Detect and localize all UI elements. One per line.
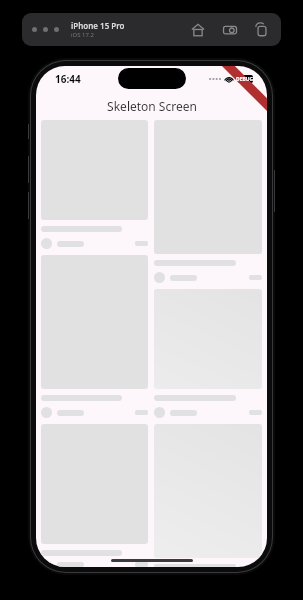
button[interactable]: Window control: [43, 27, 48, 32]
button[interactable]: [154, 289, 262, 424]
button[interactable]: Window control: [54, 27, 59, 32]
staticText: 16:44: [55, 72, 81, 86]
button[interactable]: Window control: [32, 27, 37, 32]
button[interactable]: Rotate: [253, 21, 271, 39]
button[interactable]: Screenshot: [221, 21, 239, 39]
staticText: iPhone 15 Pro: [71, 20, 125, 31]
button[interactable]: [41, 255, 148, 424]
button[interactable]: Home: [189, 21, 207, 39]
button[interactable]: [41, 120, 148, 255]
button[interactable]: [41, 424, 148, 567]
button[interactable]: [154, 424, 262, 567]
button[interactable]: [154, 120, 262, 289]
staticText: DEBUG: [236, 76, 254, 83]
staticText: iOS 17.2: [71, 31, 94, 39]
staticText: Skeleton Screen: [107, 98, 197, 114]
